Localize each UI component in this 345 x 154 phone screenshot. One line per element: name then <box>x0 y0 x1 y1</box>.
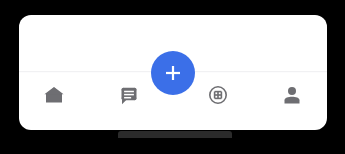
button[interactable]: Add <box>151 51 195 95</box>
button[interactable]: Messages <box>112 78 146 112</box>
button[interactable]: Explore <box>201 78 235 112</box>
button[interactable]: Home <box>37 78 71 112</box>
button[interactable]: Profile <box>275 78 309 112</box>
